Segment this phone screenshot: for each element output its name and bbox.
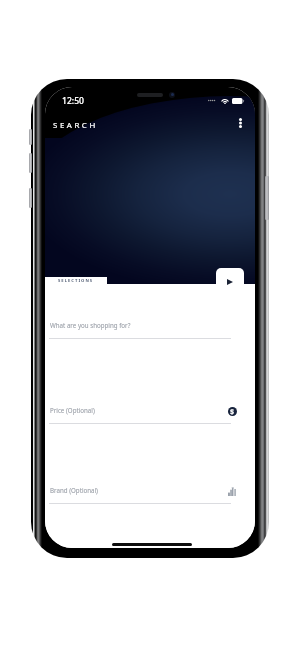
staticText: Price (Optional) bbox=[50, 406, 95, 414]
staticText: SELECTIONS bbox=[58, 278, 94, 284]
button[interactable]: Play bbox=[216, 268, 244, 296]
button[interactable]: Price (Optional) bbox=[45, 404, 255, 426]
staticText: What are you shopping for? bbox=[50, 321, 131, 329]
staticText: SEARCH bbox=[53, 120, 98, 131]
button[interactable]: More options bbox=[229, 112, 251, 134]
staticText: 12:50 bbox=[62, 95, 85, 107]
button[interactable]: What are you shopping for? bbox=[45, 319, 255, 341]
staticText: Brand (Optional) bbox=[50, 486, 98, 494]
button[interactable]: Brand (Optional) bbox=[45, 484, 255, 506]
staticText: $ bbox=[230, 407, 235, 416]
button[interactable]: SELECTIONS bbox=[45, 277, 107, 285]
